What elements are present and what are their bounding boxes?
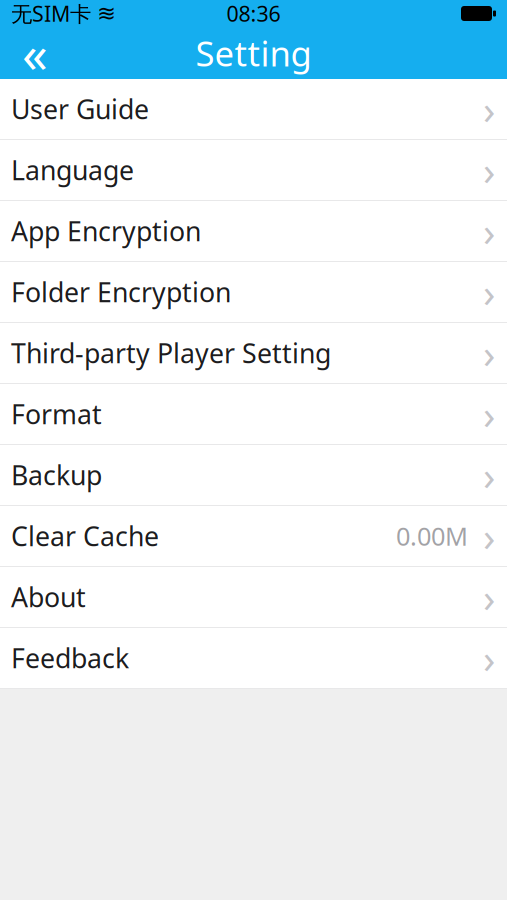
staticText: ›	[483, 570, 495, 623]
staticText: Third-party Player Setting	[11, 335, 331, 371]
staticText: App Encryption	[11, 213, 201, 249]
staticText: Backup	[11, 457, 102, 493]
staticText: ›	[483, 204, 495, 257]
button[interactable]: Language	[0, 140, 507, 201]
button[interactable]: About	[0, 567, 507, 628]
button[interactable]: Format	[0, 384, 507, 445]
staticText: Folder Encryption	[11, 274, 231, 310]
button[interactable]: App Encryption	[0, 201, 507, 262]
button[interactable]: Feedback	[0, 628, 507, 689]
staticText: 0.00M	[396, 519, 468, 553]
staticText: ›	[483, 82, 495, 135]
staticText: Language	[11, 152, 134, 188]
staticText: ›	[483, 387, 495, 440]
staticText: Feedback	[11, 640, 129, 676]
staticText: ›	[483, 326, 495, 379]
staticText: ≋	[97, 1, 116, 26]
staticText: 无SIM卡	[11, 0, 91, 28]
button[interactable]: Back	[6, 27, 64, 79]
staticText: ›	[483, 631, 495, 684]
button[interactable]: Folder Encryption	[0, 262, 507, 323]
staticText: User Guide	[11, 91, 149, 127]
button[interactable]: Third-party Player Setting	[0, 323, 507, 384]
staticText: Format	[11, 396, 102, 432]
button[interactable]: Backup	[0, 445, 507, 506]
staticText: Clear Cache	[11, 518, 159, 554]
button[interactable]: User Guide	[0, 79, 507, 140]
staticText: ›	[483, 509, 495, 562]
staticText: ›	[483, 265, 495, 318]
staticText: «	[22, 19, 48, 87]
staticText: Setting	[195, 30, 311, 76]
staticText: About	[11, 579, 86, 615]
staticText: ›	[483, 143, 495, 196]
staticText: 08:36	[226, 0, 280, 28]
button[interactable]: Clear Cache	[0, 506, 507, 567]
staticText: ›	[483, 448, 495, 501]
